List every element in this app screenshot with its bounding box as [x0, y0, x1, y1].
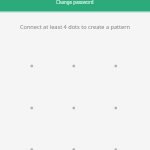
button[interactable]: Change password — [0, 0, 150, 11]
staticText: Connect at least 4 dots to create a patt… — [0, 23, 150, 31]
button[interactable]: Pattern lock grid — [0, 0, 150, 150]
staticText: Change password — [56, 0, 94, 5]
